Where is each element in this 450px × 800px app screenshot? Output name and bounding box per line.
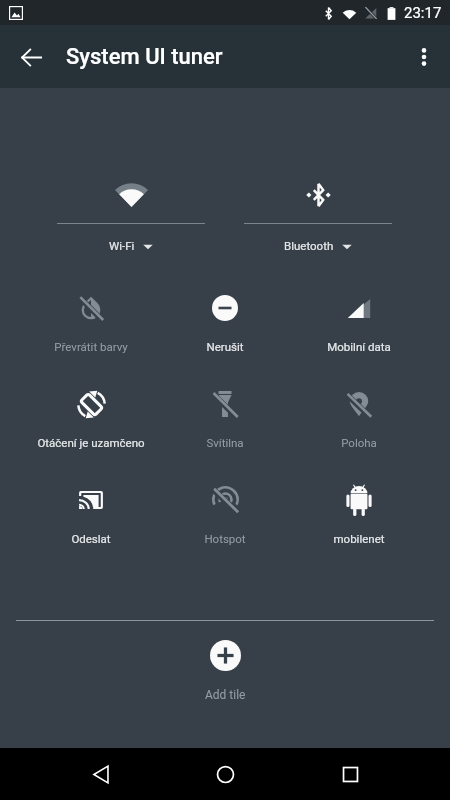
button[interactable]: Hotspot <box>158 487 292 583</box>
button[interactable]: Poloha <box>292 391 426 487</box>
button[interactable]: Mobilní data <box>292 295 426 391</box>
button[interactable]: Back <box>77 750 125 798</box>
staticText: System UI tuner <box>66 44 223 70</box>
staticText: Převrátit barvy <box>54 340 128 353</box>
button[interactable]: Wi-Fi <box>37 183 225 252</box>
button[interactable]: Svítilna <box>158 391 292 487</box>
button[interactable]: More options <box>403 36 445 78</box>
staticText: Poloha <box>341 436 377 449</box>
button[interactable]: Nerušit <box>158 295 292 391</box>
staticText: Hotspot <box>204 532 246 545</box>
staticText: Odeslat <box>71 532 111 545</box>
staticText: 23:17 <box>404 4 442 22</box>
staticText: mobilenet <box>333 532 385 545</box>
button[interactable]: mobilenet <box>292 487 426 583</box>
staticText: Add tile <box>205 688 246 702</box>
button[interactable]: Otáčení je uzamčeno <box>24 391 158 487</box>
button[interactable]: Recents <box>326 750 374 798</box>
button[interactable]: Odeslat <box>24 487 158 583</box>
staticText: Otáčení je uzamčeno <box>37 436 145 449</box>
button[interactable]: Add tile <box>0 640 450 702</box>
staticText: Mobilní data <box>327 340 391 353</box>
staticText: Nerušit <box>206 340 244 353</box>
button[interactable]: Home <box>201 750 249 798</box>
staticText: Svítilna <box>206 436 244 449</box>
button[interactable]: Back <box>10 36 52 78</box>
staticText: Bluetooth <box>284 239 334 252</box>
staticText: Wi-Fi <box>109 239 135 252</box>
button[interactable]: Bluetooth <box>224 183 412 252</box>
button[interactable]: Převrátit barvy <box>24 295 158 391</box>
